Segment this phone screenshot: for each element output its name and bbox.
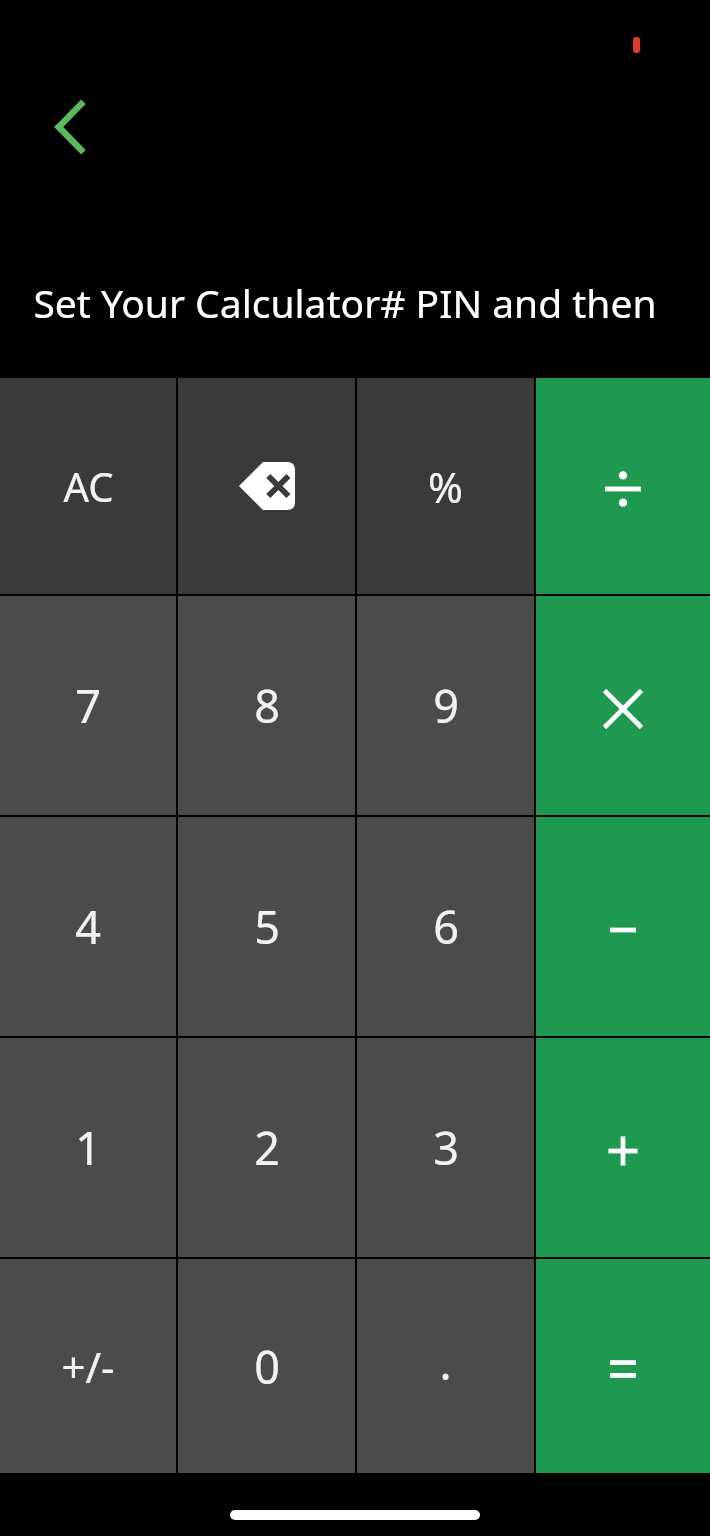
staticText: 6 bbox=[433, 896, 459, 957]
staticText: 8 bbox=[254, 675, 280, 736]
staticText: . bbox=[439, 1332, 452, 1393]
staticText: +/- bbox=[61, 1338, 115, 1395]
staticText: 0 bbox=[254, 1336, 280, 1397]
button[interactable]: 0 bbox=[178, 1259, 355, 1473]
button[interactable]: 8 bbox=[178, 596, 355, 815]
staticText: 3 bbox=[433, 1117, 459, 1178]
staticText: 9 bbox=[433, 675, 459, 736]
button[interactable]: Backspace bbox=[178, 378, 355, 594]
button[interactable]: 3 bbox=[357, 1038, 534, 1257]
button[interactable]: Minus bbox=[536, 817, 710, 1036]
button[interactable]: 9 bbox=[357, 596, 534, 815]
button[interactable]: Back bbox=[34, 92, 106, 162]
staticText: % bbox=[428, 458, 463, 515]
button[interactable]: Multiply bbox=[536, 596, 710, 815]
staticText: 5 bbox=[254, 896, 280, 957]
staticText: AC bbox=[63, 459, 114, 513]
button[interactable]: +/- bbox=[0, 1259, 176, 1473]
staticText: Set Your Calculator# PIN and then press … bbox=[0, 276, 700, 329]
staticText: 7 bbox=[75, 675, 101, 736]
button[interactable]: 1 bbox=[0, 1038, 176, 1257]
button[interactable]: . bbox=[357, 1259, 534, 1473]
button[interactable]: 6 bbox=[357, 817, 534, 1036]
button[interactable]: Divide bbox=[536, 378, 710, 594]
button[interactable]: 2 bbox=[178, 1038, 355, 1257]
button[interactable]: 7 bbox=[0, 596, 176, 815]
staticText: 2 bbox=[254, 1117, 280, 1178]
button[interactable]: 4 bbox=[0, 817, 176, 1036]
button[interactable]: AC bbox=[0, 378, 176, 594]
button[interactable]: Equals bbox=[536, 1259, 710, 1473]
staticText: 4 bbox=[75, 896, 101, 957]
staticText: 1 bbox=[75, 1117, 101, 1178]
button[interactable]: 5 bbox=[178, 817, 355, 1036]
button[interactable]: Plus bbox=[536, 1038, 710, 1257]
button[interactable]: % bbox=[357, 378, 534, 594]
